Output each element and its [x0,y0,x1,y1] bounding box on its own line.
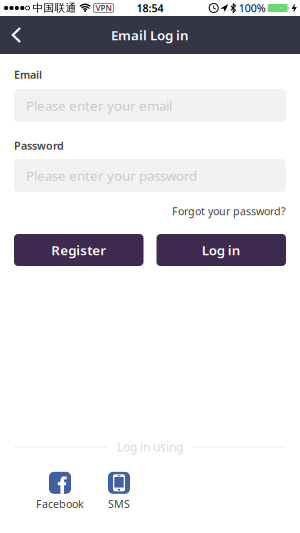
button[interactable]: Log in [156,234,286,266]
staticText: VPN [96,3,112,13]
staticText: Please enter your password [26,167,197,184]
staticText: Email [14,67,42,82]
staticText: Log in using [117,439,183,455]
staticText: Password [14,138,64,153]
staticText: Email Log in [111,26,189,44]
staticText: SMS [108,497,130,511]
staticText: Log in [202,241,241,259]
staticText: Facebook [36,497,84,511]
button[interactable]: Back [0,16,35,54]
staticText: 中国联通 [33,1,77,14]
button[interactable]: Forgot your password? [172,205,286,217]
staticText: 18:54 [136,1,163,15]
staticText: Forgot your password? [172,204,286,218]
button[interactable]: SMS [97,472,141,511]
staticText: 100% [239,1,266,15]
button[interactable]: Register [14,234,143,266]
staticText: Please enter your email [26,97,172,114]
button[interactable]: Facebook [32,472,88,511]
staticText: Register [51,241,106,259]
